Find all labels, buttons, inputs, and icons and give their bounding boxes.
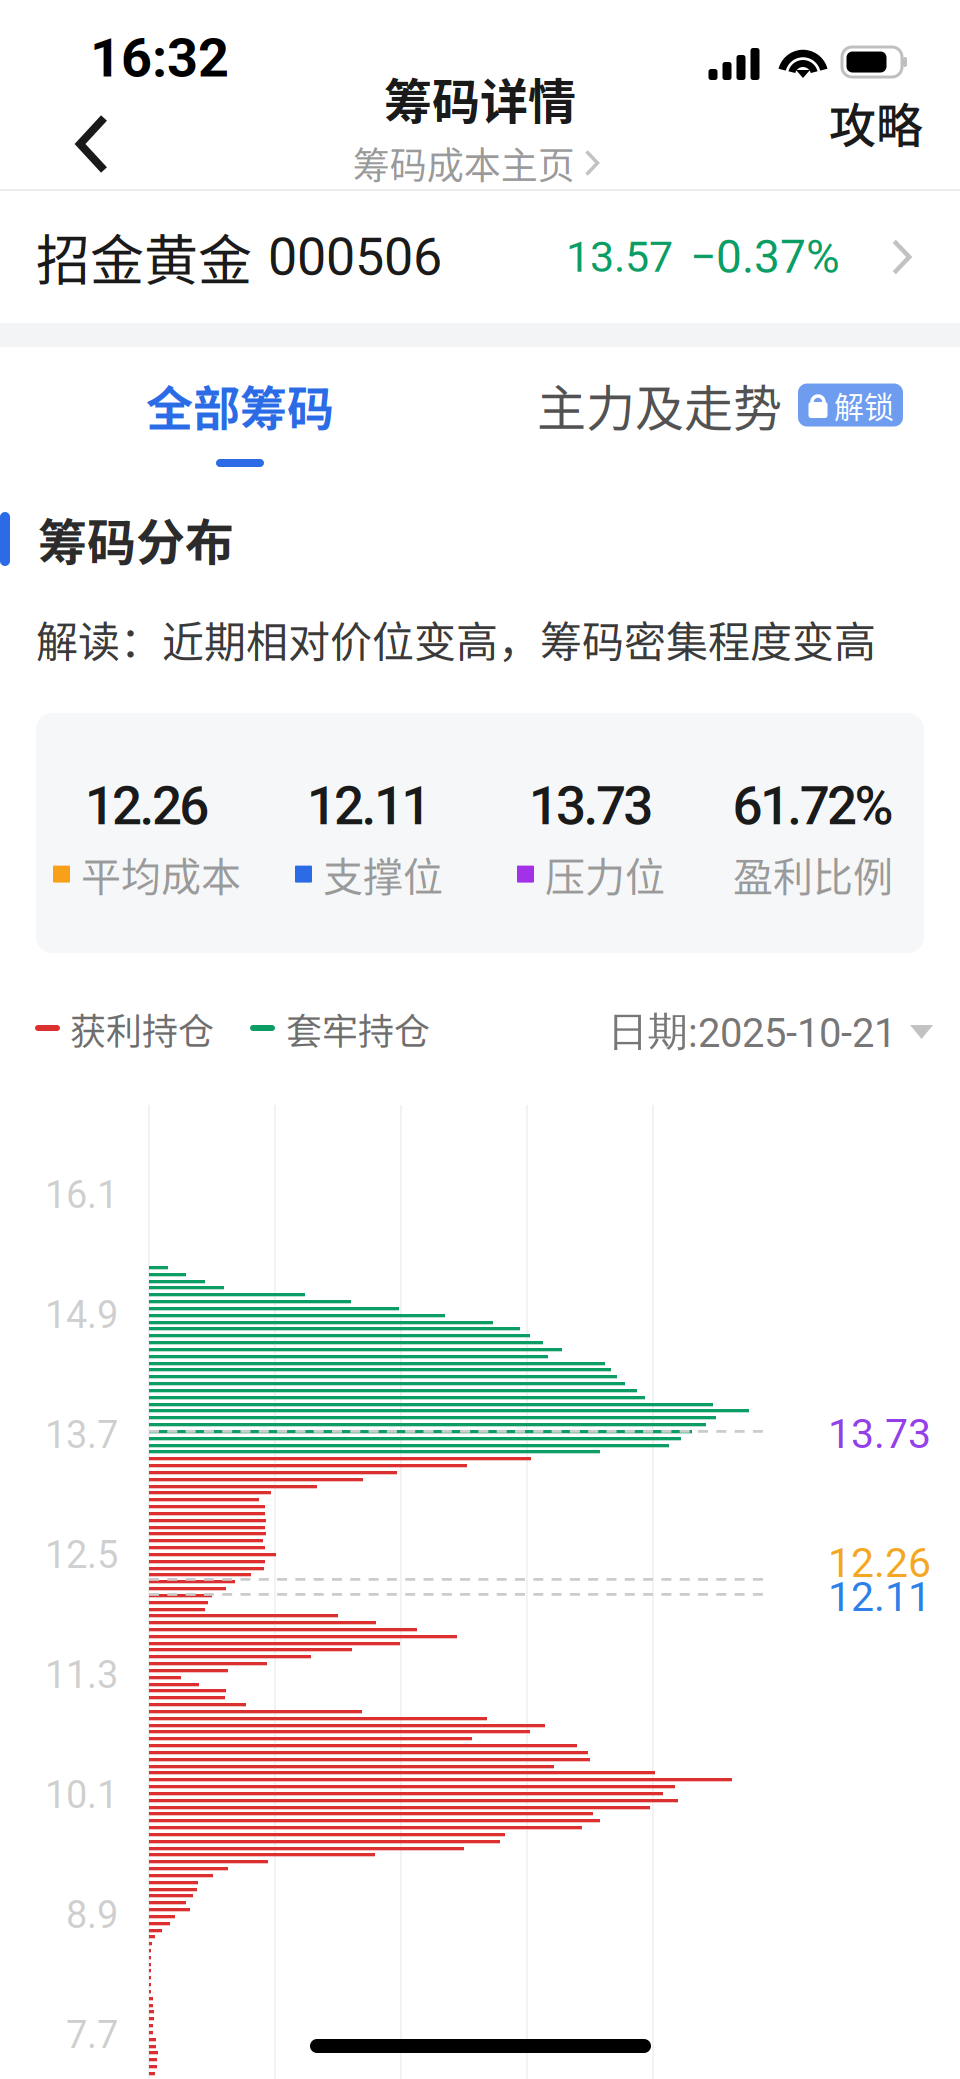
staticText: 盈利比例 xyxy=(733,845,893,903)
staticText: 13.73 xyxy=(529,775,653,837)
staticText: 12.11 xyxy=(828,1573,931,1621)
staticText: 12.26 xyxy=(85,775,209,837)
staticText: 全部筹码 xyxy=(146,371,334,439)
staticText: 13.57 xyxy=(566,232,673,282)
staticText: 解读：近期相对价位变高，筹码密集程度变高 xyxy=(36,609,876,669)
staticText: 主力及走势 xyxy=(537,369,782,440)
staticText: 日期:2025-10-21 xyxy=(608,1007,896,1057)
staticText: 61.72% xyxy=(732,775,893,837)
staticText: 13.73 xyxy=(828,1410,931,1458)
staticText: 12.5 xyxy=(45,1533,118,1577)
staticText: 解锁 xyxy=(834,383,894,427)
staticText: 筹码分布 xyxy=(38,503,234,574)
staticText: 12.26 xyxy=(828,1539,931,1587)
button[interactable]: 返回 xyxy=(0,0,960,2079)
staticText: −0.37% xyxy=(690,230,840,284)
staticText: 14.9 xyxy=(45,1293,118,1337)
staticText: 筹码详情 xyxy=(384,63,576,133)
staticText: 筹码成本主页 xyxy=(353,136,575,190)
staticText: 获利持仓 xyxy=(70,1003,214,1055)
staticText: 13.7 xyxy=(45,1413,118,1457)
staticText: 12.11 xyxy=(307,775,431,837)
button[interactable]: 日期:2025-10-21 xyxy=(0,0,960,2079)
staticText: 套牢持仓 xyxy=(286,1003,430,1055)
staticText: 招金黄金 xyxy=(36,218,252,296)
staticText: 10.1 xyxy=(45,1773,118,1817)
button[interactable]: 筹码成本主页 xyxy=(0,0,960,2079)
staticText: 16:32 xyxy=(90,26,229,90)
staticText: 11.3 xyxy=(45,1653,118,1697)
staticText: 攻略 xyxy=(829,88,923,156)
button[interactable]: 招金黄金 xyxy=(0,191,960,323)
staticText: 压力位 xyxy=(545,845,665,903)
staticText: 7.7 xyxy=(66,2013,118,2057)
staticText: 平均成本 xyxy=(81,845,241,903)
button[interactable]: 攻略 xyxy=(0,0,960,2079)
button[interactable]: 全部筹码 xyxy=(0,0,960,2079)
staticText: 000506 xyxy=(268,226,442,287)
button[interactable]: 主力及走势 xyxy=(0,0,960,2079)
staticText: 8.9 xyxy=(66,1893,118,1937)
staticText: 16.1 xyxy=(45,1173,118,1217)
staticText: 支撑位 xyxy=(323,845,443,903)
